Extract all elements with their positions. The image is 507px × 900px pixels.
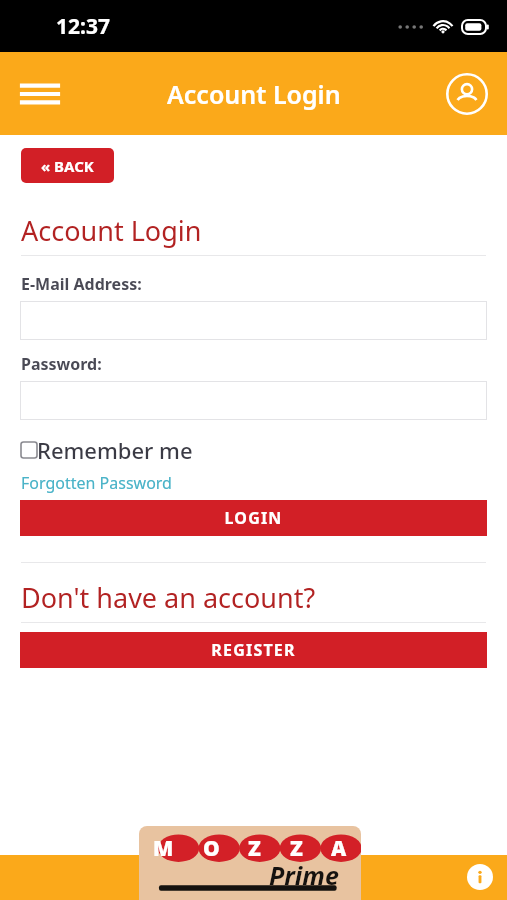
staticText: A xyxy=(331,834,347,863)
button[interactable]: Menu xyxy=(14,68,66,120)
button[interactable]: Remember me xyxy=(21,435,193,465)
staticText: Z xyxy=(290,834,303,863)
staticText: REGISTER xyxy=(211,639,296,661)
staticText: Don't have an account? xyxy=(21,579,316,616)
staticText: E-Mail Address: xyxy=(21,273,142,295)
staticText: 12:37 xyxy=(56,12,110,41)
staticText: M xyxy=(153,834,174,863)
staticText: Prime xyxy=(269,858,339,892)
staticText: Account Login xyxy=(167,77,341,111)
button[interactable] xyxy=(20,301,487,340)
button[interactable]: « BACK xyxy=(21,148,114,183)
button[interactable] xyxy=(20,381,487,420)
button[interactable]: Account xyxy=(441,68,493,120)
staticText: Z xyxy=(248,834,261,863)
button[interactable]: M xyxy=(139,826,361,900)
button[interactable]: Forgotten Password xyxy=(21,472,172,494)
staticText: Remember me xyxy=(37,435,193,465)
button[interactable]: Info xyxy=(467,864,493,890)
button[interactable]: LOGIN xyxy=(20,500,487,536)
staticText: LOGIN xyxy=(224,507,283,529)
staticText: « BACK xyxy=(41,156,94,176)
button[interactable]: REGISTER xyxy=(20,632,487,668)
staticText: Account Login xyxy=(21,212,202,249)
staticText: O xyxy=(203,834,220,863)
staticText: Password: xyxy=(21,353,102,375)
